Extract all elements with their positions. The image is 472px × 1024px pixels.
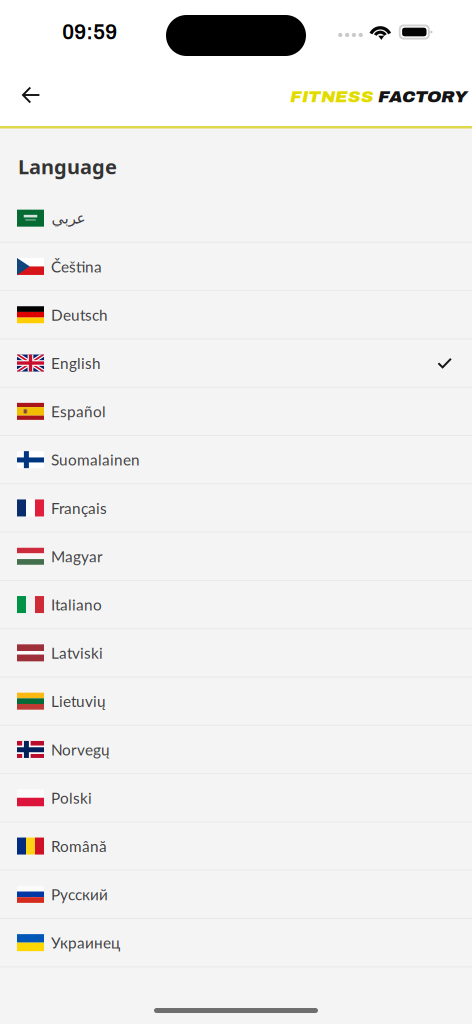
staticText: Čeština (51, 257, 102, 276)
staticText: Magyar (51, 547, 103, 565)
staticText: Украинец (51, 933, 120, 952)
button[interactable]: Italiano (0, 581, 472, 628)
button[interactable]: Polski (0, 774, 472, 821)
staticText: 09:59 (62, 20, 117, 44)
staticText: Français (51, 499, 107, 517)
button[interactable]: Español (0, 388, 472, 435)
staticText: Norvegų (51, 740, 110, 759)
button[interactable]: عربي (0, 194, 472, 242)
staticText: Latviski (51, 644, 103, 662)
staticText: Language (18, 153, 117, 180)
button[interactable]: Lietuvių (0, 677, 472, 725)
staticText: Русский (51, 885, 108, 904)
button[interactable]: Back (0, 74, 56, 116)
button[interactable]: Suomalainen (0, 436, 472, 483)
staticText: English (51, 354, 101, 372)
staticText: Polski (51, 789, 92, 807)
staticText: Suomalainen (51, 450, 140, 469)
staticText: FACTORY (378, 87, 467, 106)
button[interactable]: Русский (0, 871, 472, 918)
staticText: عربي (51, 209, 85, 227)
staticText: Español (51, 402, 106, 421)
button[interactable]: English (0, 339, 472, 387)
staticText: Română (51, 837, 107, 855)
staticText: FITNESS (290, 87, 374, 106)
button[interactable]: Latviski (0, 629, 472, 676)
staticText: Deutsch (51, 306, 108, 324)
button[interactable]: Čeština (0, 243, 472, 290)
button[interactable]: Deutsch (0, 291, 472, 338)
button[interactable]: Magyar (0, 533, 472, 580)
button[interactable]: Украинец (0, 919, 472, 966)
staticText: Italiano (51, 595, 102, 614)
button[interactable]: Français (0, 484, 472, 532)
staticText: Lietuvių (51, 692, 106, 710)
button[interactable]: Norvegų (0, 726, 472, 773)
button[interactable]: Română (0, 822, 472, 870)
